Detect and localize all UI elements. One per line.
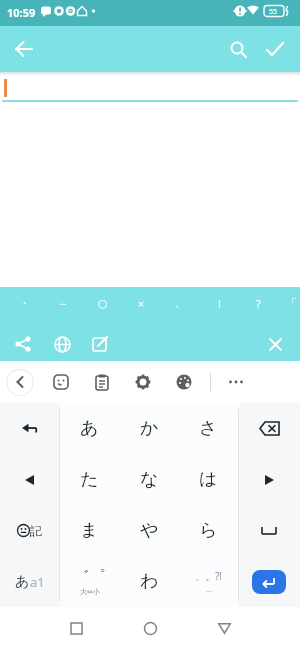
button[interactable]: − <box>44 291 83 315</box>
staticText: 記 <box>30 523 42 538</box>
staticText: か <box>140 417 159 440</box>
staticText: ま <box>80 519 99 542</box>
button[interactable] <box>260 329 290 359</box>
button[interactable] <box>252 570 286 594</box>
staticText: さ <box>199 417 218 440</box>
button[interactable] <box>258 32 292 66</box>
button[interactable] <box>0 403 59 454</box>
staticText: ・ <box>19 296 30 310</box>
staticText: ら <box>199 519 218 542</box>
staticText: ゛゜ <box>73 567 106 587</box>
staticText: − <box>60 296 67 311</box>
button[interactable]: 、。?! <box>179 556 238 607</box>
button[interactable]: 「 <box>278 291 300 315</box>
staticText: 55 <box>269 7 278 17</box>
button[interactable]: か <box>119 403 179 454</box>
button[interactable] <box>47 329 77 359</box>
staticText: 、。?! <box>195 569 223 583</box>
button[interactable]: な <box>119 454 179 505</box>
button[interactable] <box>238 505 300 556</box>
staticText: た <box>80 468 99 491</box>
button[interactable] <box>6 31 42 67</box>
button[interactable] <box>129 368 157 396</box>
button[interactable]: や <box>119 505 179 556</box>
staticText: ! <box>218 296 221 311</box>
button[interactable]: 、 <box>161 291 200 315</box>
button[interactable] <box>0 454 59 505</box>
button[interactable]: ? <box>239 291 278 315</box>
button[interactable] <box>86 329 116 359</box>
staticText: 、 <box>175 296 186 310</box>
button[interactable]: ○ <box>83 291 122 315</box>
button[interactable] <box>128 607 172 649</box>
button[interactable]: あ <box>59 403 119 454</box>
staticText: わ <box>140 570 159 593</box>
button[interactable]: は <box>179 454 238 505</box>
button[interactable] <box>8 329 38 359</box>
button[interactable]: た <box>59 454 119 505</box>
button[interactable]: ・ <box>5 291 44 315</box>
staticText: a1 <box>30 573 45 591</box>
button[interactable] <box>222 368 250 396</box>
staticText: 「 <box>286 296 297 310</box>
staticText: な <box>140 468 159 491</box>
button[interactable] <box>221 32 255 66</box>
button[interactable] <box>47 368 75 396</box>
staticText: ○ <box>98 297 108 310</box>
staticText: は <box>199 468 218 491</box>
button[interactable]: ! <box>200 291 239 315</box>
staticText: あ <box>15 573 30 591</box>
staticText: や <box>140 519 159 542</box>
staticText: あ <box>80 417 99 440</box>
staticText: … <box>206 583 213 594</box>
staticText: ? <box>256 296 261 311</box>
button[interactable]: 記 <box>0 505 59 556</box>
button[interactable] <box>170 368 198 396</box>
button[interactable]: ま <box>59 505 119 556</box>
button[interactable]: × <box>122 291 161 315</box>
button[interactable]: ら <box>179 505 238 556</box>
button[interactable] <box>6 368 34 396</box>
button[interactable] <box>54 607 98 649</box>
button[interactable]: ゛゜ <box>59 556 119 607</box>
button[interactable] <box>238 403 300 454</box>
button[interactable] <box>88 368 116 396</box>
staticText: 大⇔小 <box>80 587 100 596</box>
button[interactable] <box>238 454 300 505</box>
button[interactable]: わ <box>119 556 179 607</box>
button[interactable]: さ <box>179 403 238 454</box>
staticText: × <box>138 296 145 311</box>
button[interactable]: あ <box>0 556 59 607</box>
button[interactable] <box>202 607 246 649</box>
staticText: 10:59 <box>7 5 36 20</box>
